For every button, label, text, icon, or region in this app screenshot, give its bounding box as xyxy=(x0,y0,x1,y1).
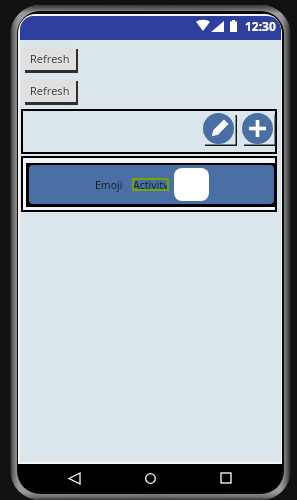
staticText: Activity xyxy=(133,178,169,191)
staticText: Emoji xyxy=(95,178,123,192)
staticText: 12:30 xyxy=(245,18,276,34)
button[interactable]: Emoji preview xyxy=(174,168,209,201)
button[interactable]: Edit xyxy=(203,113,234,144)
button[interactable]: Add xyxy=(242,113,273,144)
button[interactable]: Back xyxy=(54,464,94,492)
button[interactable]: Recent apps xyxy=(206,464,246,492)
button[interactable]: Refresh xyxy=(23,47,76,70)
staticText: Refresh xyxy=(30,83,70,98)
button[interactable]: Home xyxy=(130,464,170,492)
button[interactable]: Activity xyxy=(132,178,169,191)
staticText: Refresh xyxy=(30,51,70,66)
button[interactable]: Refresh xyxy=(23,79,76,102)
